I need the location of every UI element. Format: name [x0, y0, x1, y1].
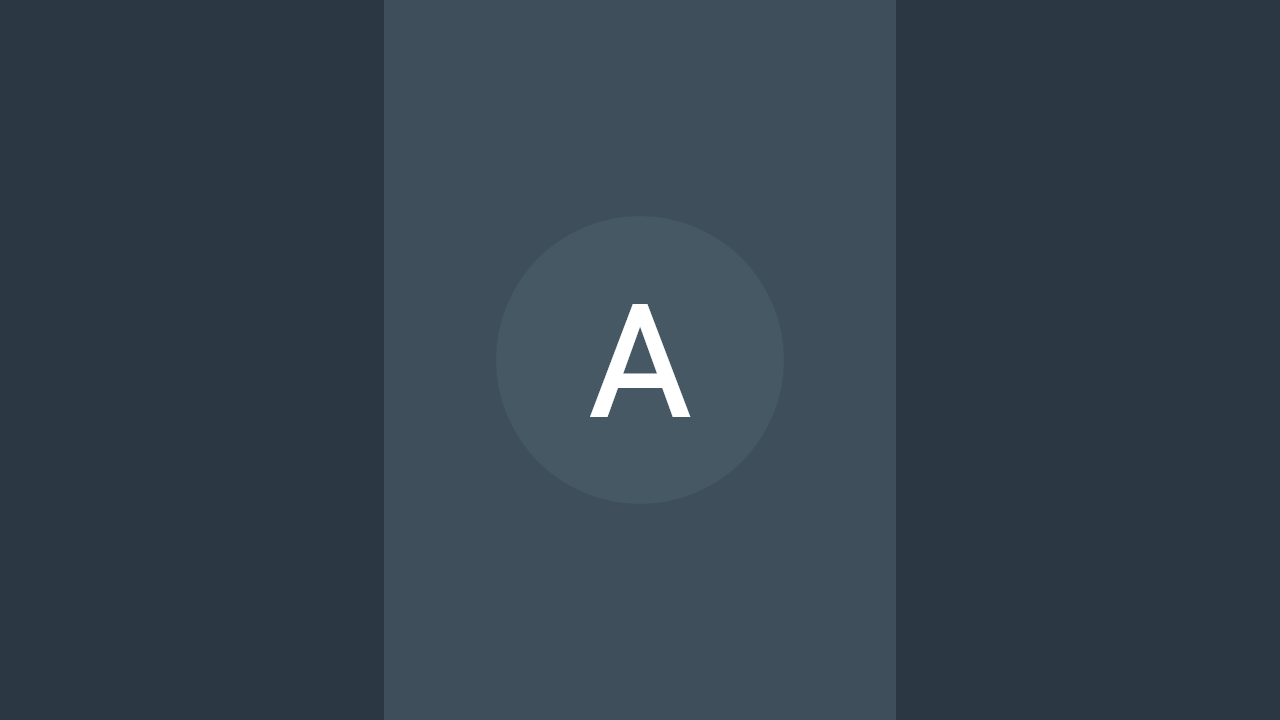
staticText: A — [589, 272, 691, 454]
staticText: A — [589, 272, 691, 454]
button[interactable]: Account avatar A — [496, 216, 784, 504]
